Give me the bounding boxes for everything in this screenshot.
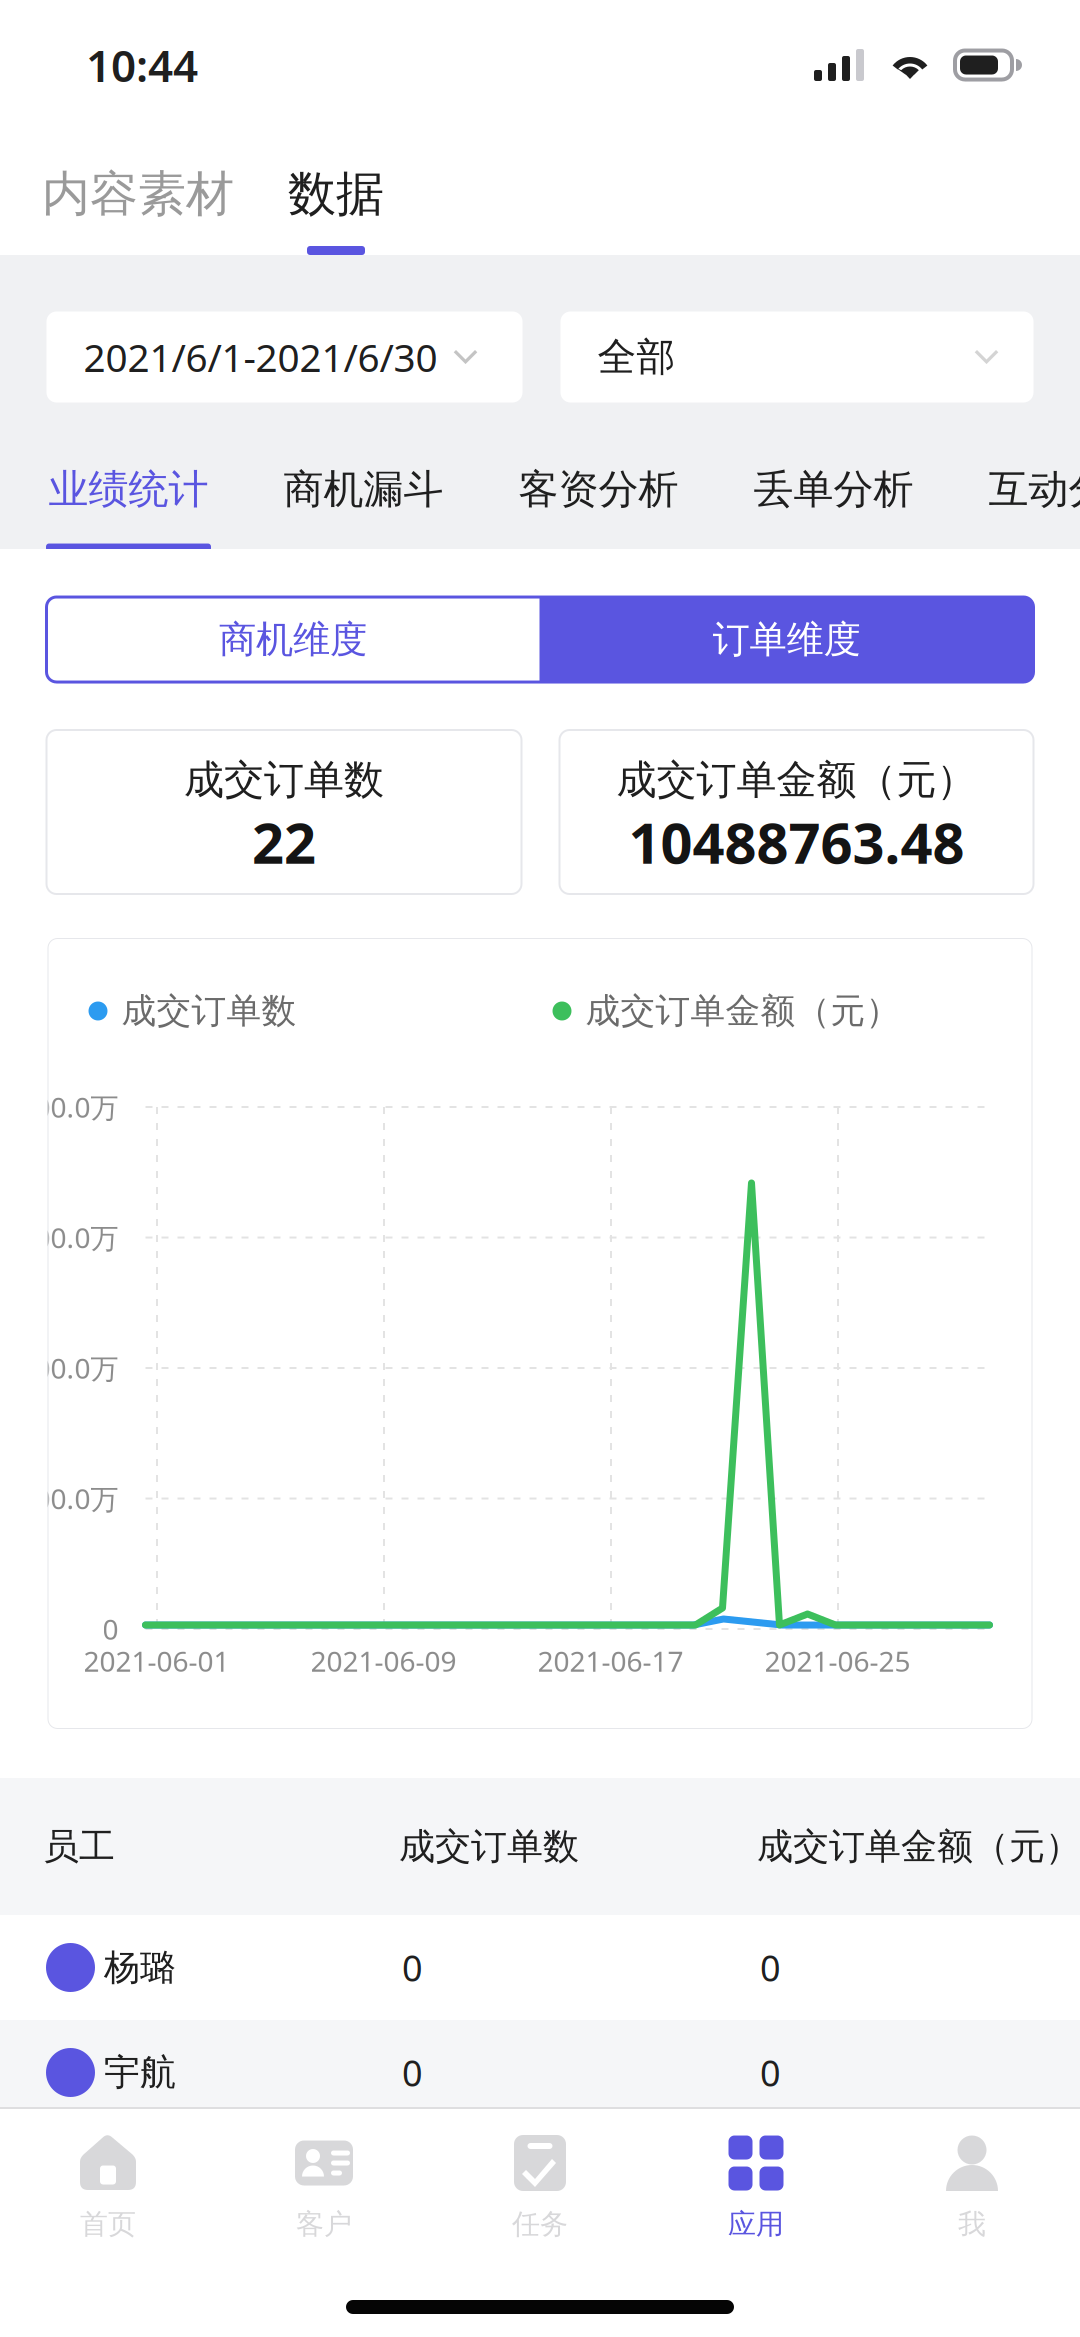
button[interactable]: 任务 [432,2109,648,2254]
staticText: 22 [252,805,316,879]
staticText: 首页 [80,2207,136,2241]
staticText: 2021-06-01 [83,1642,229,1680]
staticText: 10488763.48 [628,805,964,879]
button[interactable]: 客资分析 [516,461,681,551]
staticText: 0 [402,1944,423,1991]
button[interactable]: 全部 [560,311,1033,402]
staticText: 成交订单数 [399,1824,579,1869]
staticText: 任务 [512,2207,568,2241]
button[interactable]: 订单维度 [539,597,1033,682]
staticText: 客户 [296,2207,352,2241]
button[interactable]: 互动分析 [986,461,1080,551]
staticText: 应用 [728,2207,784,2241]
button[interactable]: 应用 [648,2109,864,2254]
staticText: 成交订单金额（元） [757,1824,1080,1869]
staticText: 数据 [288,164,384,223]
staticText: 2021-06-09 [310,1642,456,1680]
staticText: 0 [760,2049,781,2096]
staticText: 00.0万 [34,1349,118,1387]
button[interactable]: 首页 [0,2109,216,2254]
staticText: 我 [958,2207,986,2241]
staticText: 0 [402,2049,423,2096]
staticText: 客资分析 [518,465,678,514]
staticText: 2021-06-17 [537,1642,683,1680]
staticText: 成交订单金额（元） [585,990,900,1032]
staticText: 成交订单数 [184,755,384,804]
staticText: 商机漏斗 [283,465,443,514]
staticText: 员工 [43,1824,115,1869]
staticText: 2021-06-25 [764,1642,910,1680]
staticText: 商机维度 [219,617,367,662]
button[interactable]: 客户 [216,2109,432,2254]
staticText: 0 [102,1610,118,1648]
staticText: 订单维度 [712,617,860,662]
button[interactable]: 商机漏斗 [281,461,446,551]
staticText: 10:44 [86,36,198,94]
button[interactable]: 杨璐 [0,1915,1080,2020]
staticText: 丢单分析 [753,465,913,514]
staticText: 2021/6/1-2021/6/30 [83,331,437,383]
button[interactable]: 商机维度 [46,597,539,682]
staticText: 00.0万 [34,1088,118,1126]
staticText: 宇航 [104,2050,176,2095]
staticText: 00.0万 [34,1219,118,1256]
staticText: 杨璐 [104,1945,176,1990]
staticText: 全部 [597,333,675,381]
button[interactable]: 数据 [288,163,384,255]
staticText: 成交订单金额（元） [616,755,976,804]
button[interactable]: 内容素材 [42,163,234,255]
staticText: 内容素材 [42,164,234,223]
staticText: 00.0万 [34,1480,118,1517]
button[interactable]: 宇航 [0,2020,1080,2107]
button[interactable]: 2021/6/1-2021/6/30 [46,311,522,402]
staticText: 业绩统计 [48,465,208,514]
staticText: 成交订单数 [121,990,296,1032]
staticText: 互动分析 [988,465,1080,514]
staticText: 0 [760,1944,781,1991]
button[interactable]: 丢单分析 [751,461,916,551]
button[interactable]: 业绩统计 [46,461,211,551]
button[interactable]: 我 [864,2109,1080,2254]
